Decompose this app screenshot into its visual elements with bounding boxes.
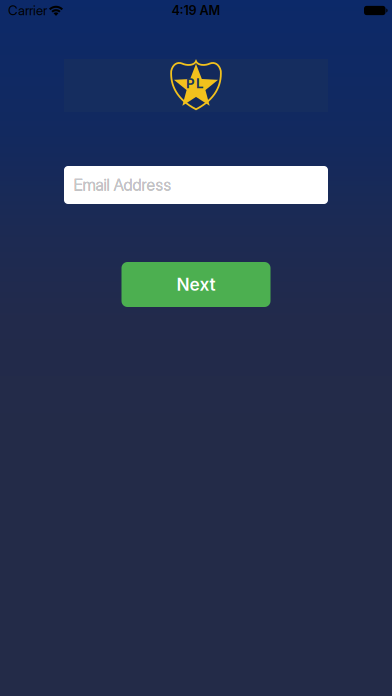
staticText: L bbox=[196, 75, 204, 91]
button[interactable]: Next bbox=[121, 262, 270, 307]
textField[interactable]: Email Address bbox=[73, 175, 328, 195]
staticText: Email Address bbox=[73, 175, 171, 195]
staticText: P bbox=[186, 75, 195, 91]
staticText: 4:19 AM bbox=[171, 3, 220, 18]
staticText: Next bbox=[176, 274, 215, 295]
staticText: Email Address bbox=[73, 175, 171, 195]
staticText: Carrier bbox=[8, 2, 47, 18]
